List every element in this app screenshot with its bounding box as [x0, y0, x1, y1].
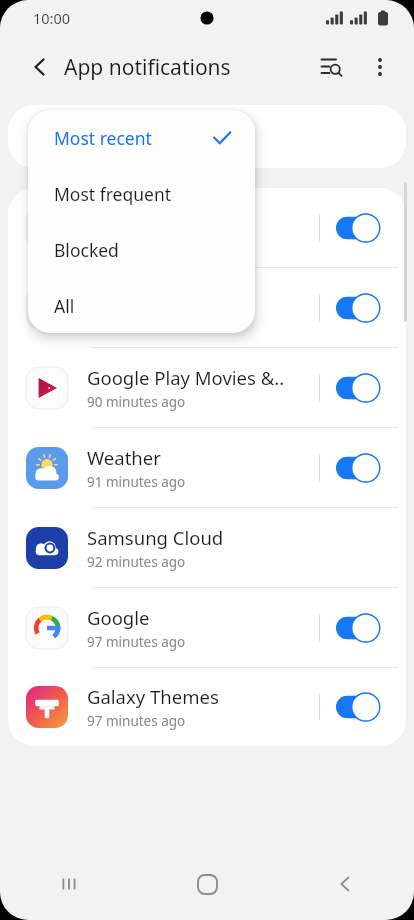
staticText: 10:00: [33, 8, 71, 28]
staticText: Weather: [87, 445, 161, 470]
staticText: All: [54, 294, 211, 318]
button[interactable]: Home: [138, 848, 276, 920]
button[interactable]: Search: [308, 43, 356, 91]
button[interactable]: Notification toggle: [336, 214, 384, 242]
staticText: Blocked: [54, 238, 211, 262]
staticText: Galaxy Themes: [87, 684, 219, 709]
button[interactable]: Recent apps: [0, 848, 138, 920]
staticText: 90 minutes ago: [87, 393, 186, 411]
button[interactable]: Back: [276, 848, 414, 920]
button[interactable]: Most recent: [28, 110, 255, 166]
button[interactable]: Weather: [8, 428, 406, 507]
button[interactable]: Back: [18, 45, 62, 89]
staticText: Google: [87, 605, 150, 630]
staticText: Most recent: [54, 126, 211, 150]
staticText: 91 minutes ago: [87, 473, 186, 491]
button[interactable]: Notification toggle: [336, 614, 384, 642]
button[interactable]: Notification toggle: [336, 374, 384, 402]
button[interactable]: More options: [356, 43, 404, 91]
staticText: 97 minutes ago: [87, 712, 186, 730]
staticText: 97 minutes ago: [87, 633, 186, 651]
button[interactable]: All: [28, 278, 255, 333]
button[interactable]: Most frequent: [28, 166, 255, 222]
button[interactable]: Galaxy Themes: [8, 668, 406, 746]
staticText: App notifications: [64, 53, 231, 82]
button[interactable]: Samsung Cloud: [8, 508, 406, 587]
button[interactable]: Google Play Movies &..: [8, 348, 406, 427]
button[interactable]: Blocked: [28, 222, 255, 278]
button[interactable]: Notification toggle: [8, 268, 406, 347]
staticText: Most frequent: [54, 182, 211, 206]
button[interactable]: Notification toggle: [336, 693, 384, 721]
button[interactable]: Notification toggle: [336, 294, 384, 322]
staticText: Google Play Movies &..: [87, 365, 285, 390]
staticText: 92 minutes ago: [87, 553, 186, 571]
button[interactable]: Notification toggle: [8, 188, 406, 267]
button[interactable]: Google: [8, 588, 406, 667]
staticText: Samsung Cloud: [87, 525, 224, 550]
button[interactable]: Notification toggle: [336, 454, 384, 482]
